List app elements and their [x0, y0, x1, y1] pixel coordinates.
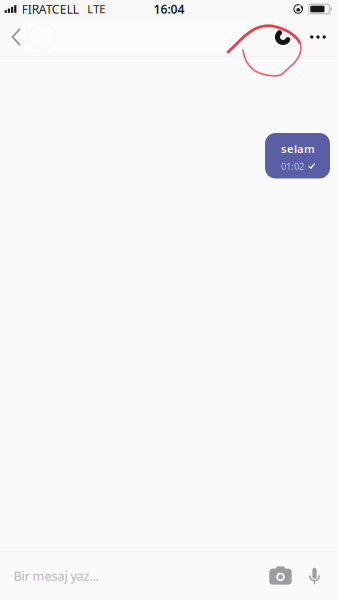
button[interactable]: Record voice message	[300, 552, 329, 600]
staticText: 01:02	[281, 160, 304, 172]
staticText: Bir mesaj yaz...	[13, 567, 98, 584]
button[interactable]: More options	[304, 18, 332, 56]
staticText: LTE	[87, 1, 105, 17]
button[interactable]: Back	[3, 18, 29, 56]
staticText: FIRATCELL	[22, 1, 79, 17]
button[interactable]: Camera	[261, 552, 300, 600]
button[interactable]: Call	[267, 18, 299, 56]
staticText: selam	[281, 141, 315, 156]
staticText: 16:04	[153, 1, 184, 17]
